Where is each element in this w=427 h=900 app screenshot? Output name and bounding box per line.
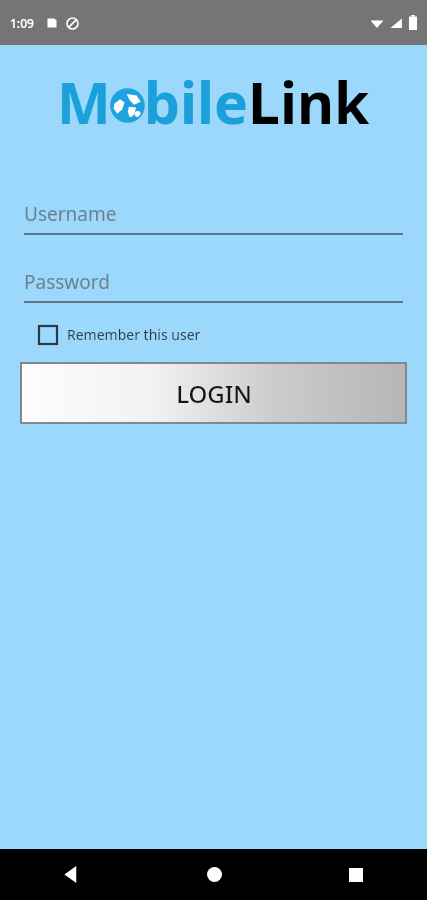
staticText: 1:09 [10, 15, 34, 31]
staticText: LOGIN [176, 377, 252, 410]
staticText: bileLink [144, 63, 370, 141]
button[interactable]: Remember this user [39, 325, 201, 344]
button[interactable]: Password [24, 269, 403, 303]
staticText: Password [24, 269, 110, 295]
button[interactable]: Home [143, 849, 285, 900]
staticText: Remember this user [67, 325, 201, 344]
staticText: Username [24, 201, 117, 227]
button[interactable]: Back [0, 849, 143, 900]
button[interactable]: Recent apps [285, 849, 427, 900]
button[interactable]: LOGIN [22, 364, 405, 422]
staticText: M [57, 63, 111, 141]
button[interactable]: Username [24, 201, 403, 235]
